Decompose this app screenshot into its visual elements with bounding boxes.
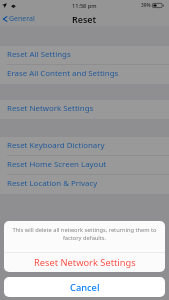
staticText: Reset Keyboard Dictionary (7, 140, 105, 151)
staticText: This will delete all network settings, r… (10, 226, 159, 242)
staticText: Reset Location & Privacy (7, 178, 98, 189)
staticText: Reset Home Screen Layout (7, 159, 107, 170)
button[interactable]: Cancel (4, 277, 165, 297)
button[interactable]: Back to General (2, 14, 35, 24)
staticText: 11:58 pm (72, 2, 97, 10)
button[interactable]: Reset Location & Privacy (0, 175, 169, 194)
other: Back to General (2, 15, 8, 23)
button[interactable]: Reset Network Settings (4, 253, 165, 272)
button[interactable]: Erase All Content and Settings (0, 65, 169, 84)
staticText: 39% (141, 2, 151, 9)
staticText: Erase All Content and Settings (7, 68, 119, 79)
button[interactable]: Reset Home Screen Layout (0, 156, 169, 175)
staticText: General (9, 14, 35, 24)
button[interactable]: Reset Network Settings (0, 100, 169, 119)
button[interactable]: Reset All Settings (0, 46, 169, 65)
staticText: Cancel (70, 281, 100, 294)
button[interactable]: Reset Keyboard Dictionary (0, 137, 169, 156)
staticText: Reset All Settings (7, 49, 71, 60)
staticText: Reset (72, 13, 97, 25)
staticText: Reset Network Settings (34, 256, 136, 269)
staticText: Reset Network Settings (7, 103, 94, 114)
